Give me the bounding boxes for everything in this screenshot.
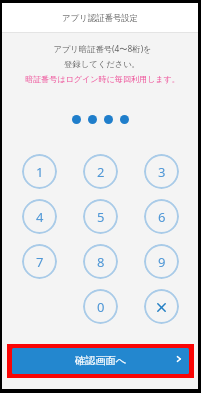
button[interactable]: 2	[83, 154, 118, 189]
staticText: 8	[97, 253, 105, 271]
staticText: 4	[36, 208, 44, 226]
button[interactable]: 5	[83, 199, 118, 234]
staticText: 0	[97, 298, 105, 316]
staticText: アプリ認証番号設定	[62, 13, 139, 24]
button[interactable]: 3	[144, 154, 179, 189]
button[interactable]: 1	[22, 154, 57, 189]
button[interactable]: 確認画面へ	[7, 344, 194, 378]
button[interactable]: 8	[83, 244, 118, 279]
button[interactable]: 6	[144, 199, 179, 234]
button[interactable]: 削除	[144, 289, 179, 324]
staticText: 9	[158, 253, 166, 271]
button[interactable]: 9	[144, 244, 179, 279]
staticText: 確認画面へ	[75, 354, 127, 367]
staticText: 2	[97, 163, 105, 181]
staticText: 暗証番号はログイン時に毎回利用します。	[25, 74, 180, 84]
staticText: 6	[158, 208, 166, 226]
button[interactable]: 7	[22, 244, 57, 279]
button[interactable]: 4	[22, 199, 57, 234]
staticText: 登録してください。	[64, 59, 140, 69]
staticText: 1	[36, 163, 44, 181]
staticText: アプリ暗証番号(4〜8桁)を	[53, 43, 152, 54]
staticText: 5	[97, 208, 105, 226]
button[interactable]: 0	[83, 289, 118, 324]
staticText: 7	[36, 253, 44, 271]
staticText: 3	[158, 163, 166, 181]
